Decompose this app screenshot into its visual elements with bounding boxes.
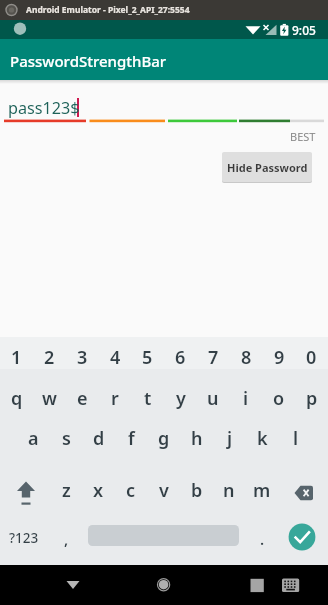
staticText: a <box>28 426 39 451</box>
staticText: b <box>191 478 203 503</box>
staticText: f <box>128 426 135 451</box>
staticText: w <box>42 386 57 411</box>
staticText: Android Emulator - Pixel_2_API_27:5554 <box>26 4 190 16</box>
staticText: k <box>257 426 268 451</box>
staticText: 1 <box>11 345 22 370</box>
staticText: 2 <box>44 345 55 370</box>
staticText: 6 <box>175 345 186 370</box>
staticText: 0 <box>306 345 317 370</box>
staticText: t <box>144 386 152 411</box>
staticText: 3 <box>77 345 88 370</box>
staticText: 8 <box>241 345 252 370</box>
staticText: d <box>93 426 105 451</box>
staticText: 9:05 <box>292 22 316 38</box>
staticText: 5 <box>142 345 153 370</box>
staticText: o <box>273 386 285 411</box>
staticText: 7 <box>208 345 219 370</box>
staticText: . <box>260 529 265 549</box>
staticText: u <box>207 386 219 411</box>
staticText: l <box>293 426 299 451</box>
staticText: n <box>223 478 235 503</box>
staticText: j <box>227 426 233 451</box>
staticText: e <box>77 386 88 411</box>
staticText: 4 <box>110 345 121 370</box>
staticText: p <box>306 386 318 411</box>
staticText: Hide Password <box>227 160 308 175</box>
staticText: pass123$ <box>8 97 80 119</box>
staticText: r <box>111 386 119 411</box>
staticText: BEST <box>290 129 316 144</box>
staticText: , <box>64 529 69 549</box>
staticText: i <box>243 386 249 411</box>
staticText: s <box>62 426 71 451</box>
staticText: x <box>93 478 104 503</box>
staticText: g <box>158 426 170 451</box>
staticText: PasswordStrengthBar <box>10 51 167 71</box>
staticText: c <box>126 478 136 503</box>
staticText: h <box>191 426 203 451</box>
staticText: q <box>11 386 23 411</box>
staticText: y <box>176 386 186 411</box>
staticText: ?123 <box>9 529 39 547</box>
staticText: v <box>159 478 169 503</box>
staticText: m <box>253 478 271 503</box>
staticText: z <box>62 478 71 503</box>
staticText: 9 <box>274 345 285 370</box>
